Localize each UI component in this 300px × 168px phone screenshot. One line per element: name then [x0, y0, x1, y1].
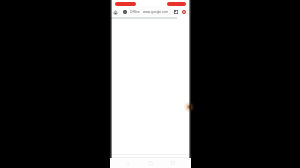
button[interactable]: Stop loading [180, 7, 188, 17]
button[interactable]: Site information [121, 7, 128, 17]
button[interactable]: Switch tabs [172, 7, 180, 17]
button[interactable]: Home [112, 7, 119, 17]
staticText: www.google.com [143, 10, 169, 14]
button[interactable]: Recent apps [167, 158, 179, 168]
button[interactable]: Offline [129, 6, 171, 16]
staticText: Offline [130, 10, 140, 14]
